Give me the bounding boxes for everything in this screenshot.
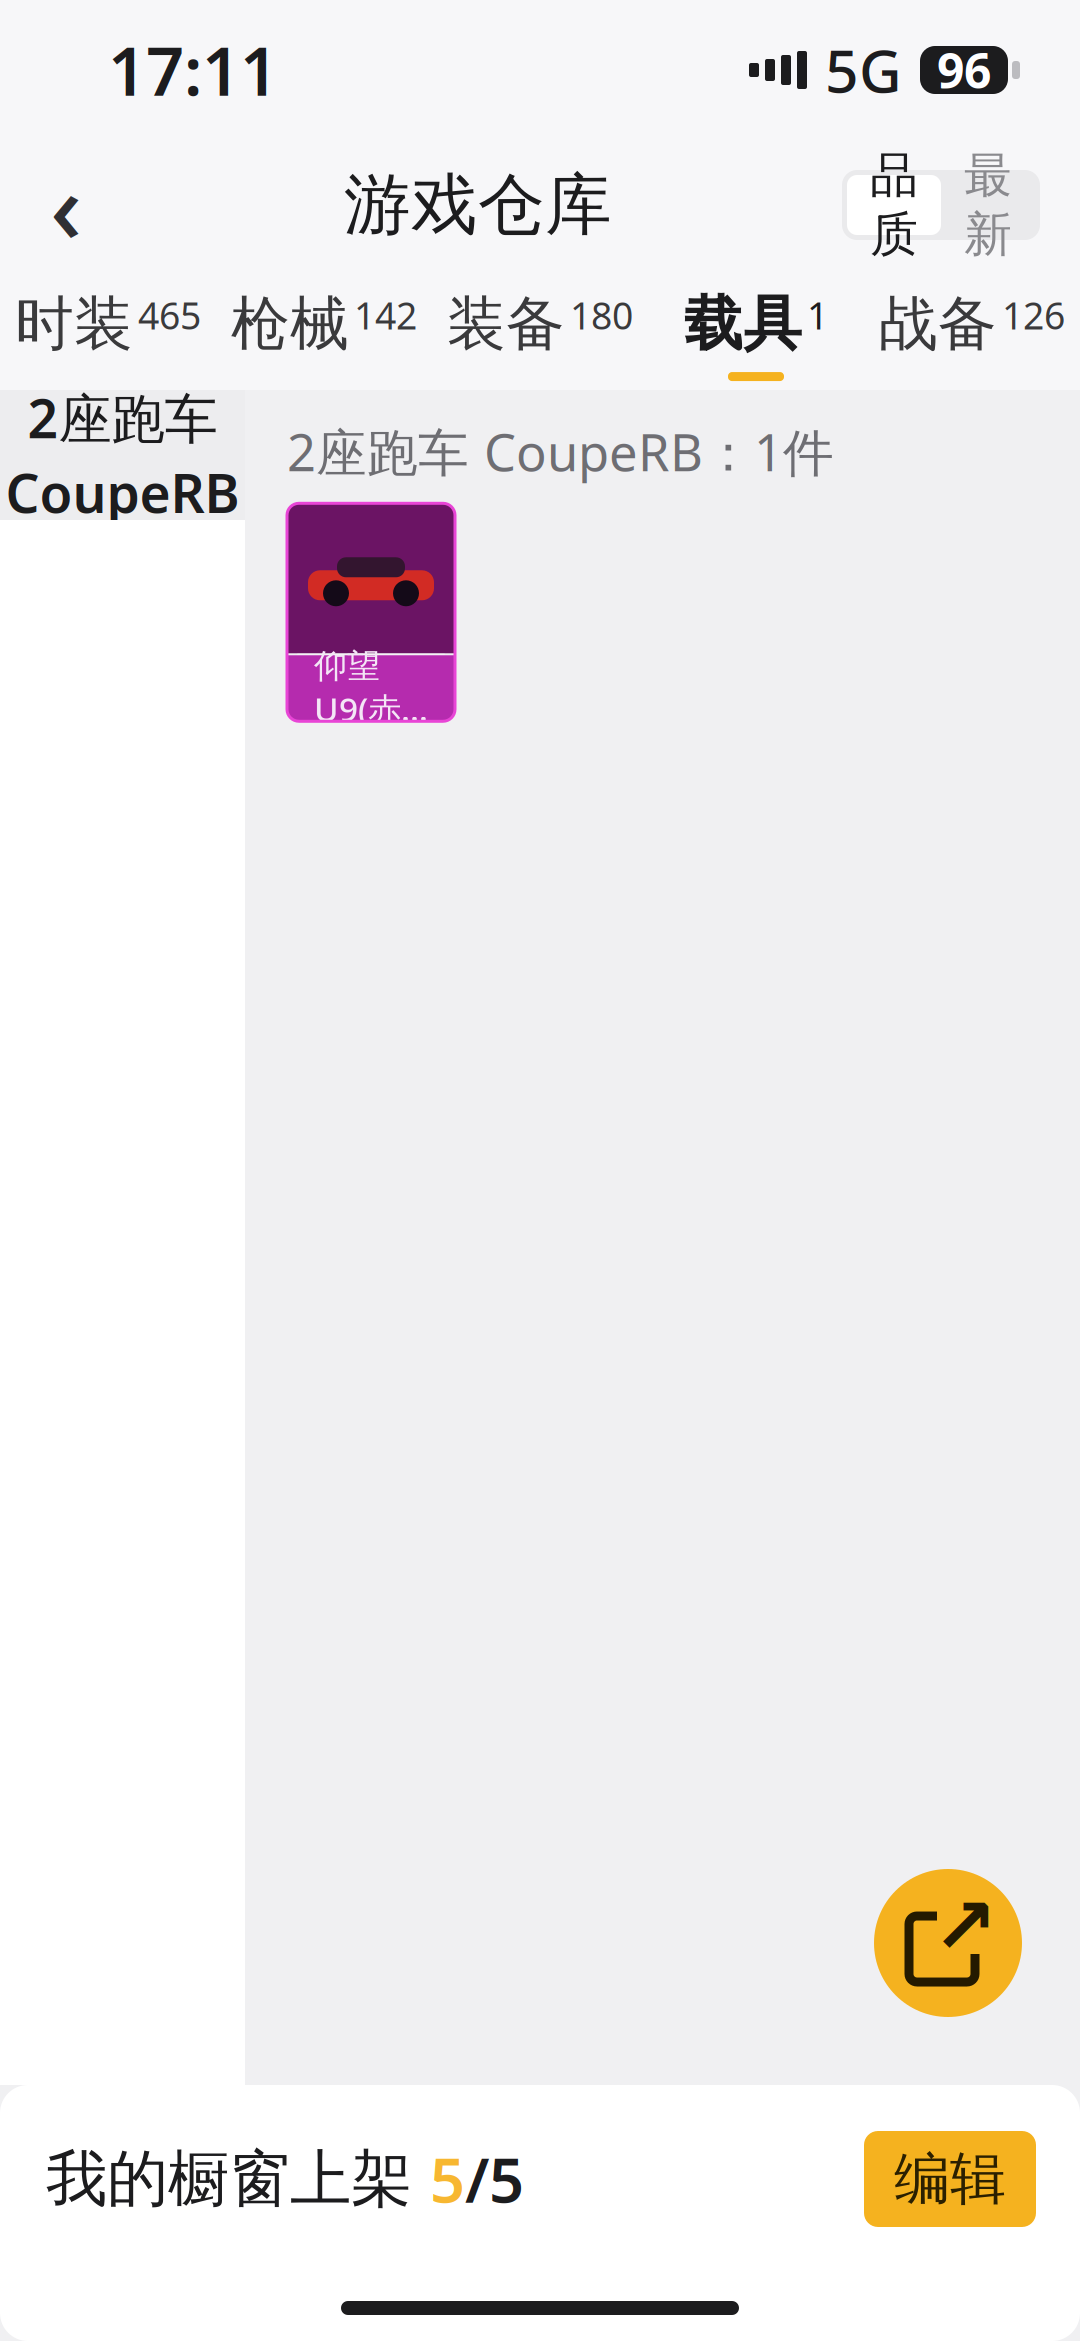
staticText: 游戏仓库 bbox=[344, 164, 612, 246]
button[interactable]: 装备 bbox=[432, 270, 648, 390]
staticText: 时装 bbox=[15, 288, 133, 360]
staticText: 战备 bbox=[879, 288, 997, 360]
staticText: 编辑 bbox=[894, 2145, 1006, 2213]
staticText: 180 bbox=[570, 290, 633, 340]
button[interactable]: 品质 bbox=[842, 170, 1040, 240]
button[interactable]: 编辑 bbox=[864, 2131, 1036, 2227]
staticText: 126 bbox=[1002, 290, 1065, 340]
staticText: 2座跑车 bbox=[27, 382, 217, 453]
staticText: 142 bbox=[354, 290, 417, 340]
staticText: 465 bbox=[138, 290, 201, 340]
button[interactable]: 战备 bbox=[864, 270, 1080, 390]
staticText: CoupeRB bbox=[5, 457, 239, 528]
staticText: 仰望 U9(赤… bbox=[314, 646, 428, 731]
staticText: 我的橱窗上架 bbox=[46, 2141, 430, 2217]
staticText: 装备 bbox=[447, 288, 565, 360]
button[interactable]: 时装 bbox=[0, 270, 216, 390]
staticText: 2座跑车 CoupeRB：1件 bbox=[287, 418, 834, 485]
button[interactable]: 2座跑车 bbox=[0, 390, 245, 520]
staticText: 96 bbox=[937, 38, 991, 102]
staticText: 品质 bbox=[870, 146, 918, 264]
staticText: /5 bbox=[465, 2138, 524, 2220]
staticText: 最新 bbox=[964, 146, 1012, 264]
staticText: 载具 bbox=[684, 288, 802, 360]
button[interactable]: 仰望 U9(赤… bbox=[287, 503, 455, 721]
button[interactable]: Back bbox=[18, 157, 114, 253]
staticText: 5G bbox=[825, 31, 902, 109]
staticText: 枪械 bbox=[231, 288, 349, 360]
staticText: ↗ bbox=[932, 1882, 997, 1970]
staticText: 17:11 bbox=[108, 26, 278, 114]
button[interactable]: Share bbox=[874, 1869, 1022, 2017]
staticText: 5 bbox=[430, 2138, 465, 2220]
button[interactable]: 载具 bbox=[648, 270, 864, 390]
staticText: 1 bbox=[807, 290, 828, 340]
button[interactable]: 枪械 bbox=[216, 270, 432, 390]
staticText: ‹ bbox=[50, 139, 82, 270]
